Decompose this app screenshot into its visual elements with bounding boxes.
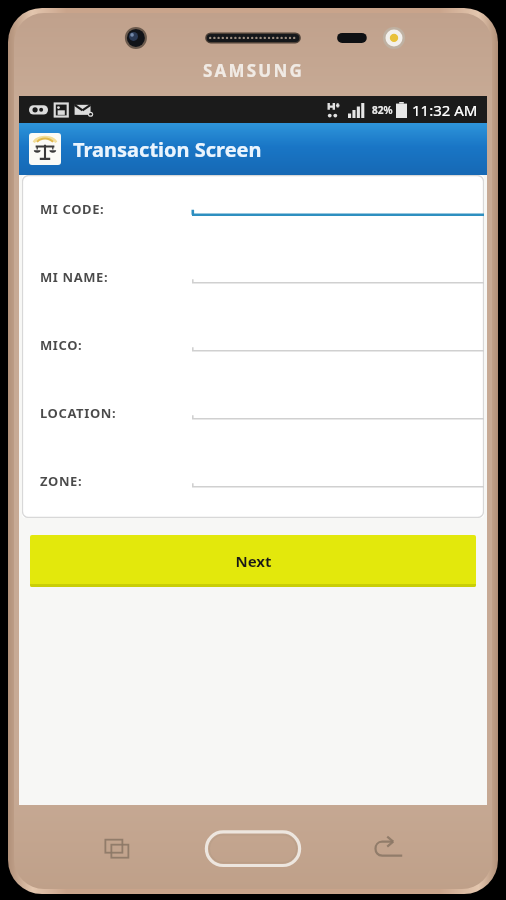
staticText: LOCATION: [40, 404, 117, 422]
staticText: Next [235, 551, 272, 571]
button[interactable]: MI CODE: [22, 175, 484, 243]
button[interactable]: Transaction Screen [19, 123, 487, 175]
staticText: Transaction Screen [73, 136, 262, 163]
staticText: SAMSUNG [203, 59, 304, 82]
staticText: 11:32 AM [412, 100, 478, 120]
button[interactable]: MI NAME: [22, 243, 484, 311]
staticText: MI CODE: [40, 200, 105, 218]
staticText: MI NAME: [40, 268, 109, 286]
staticText: 82% [372, 103, 393, 117]
button[interactable]: LOCATION: [22, 379, 484, 447]
staticText: ZONE: [40, 472, 83, 490]
staticText: MICO: [40, 336, 83, 354]
button[interactable]: MICO: [22, 311, 484, 379]
button[interactable]: Next [30, 535, 476, 587]
button[interactable]: ZONE: [22, 447, 484, 515]
